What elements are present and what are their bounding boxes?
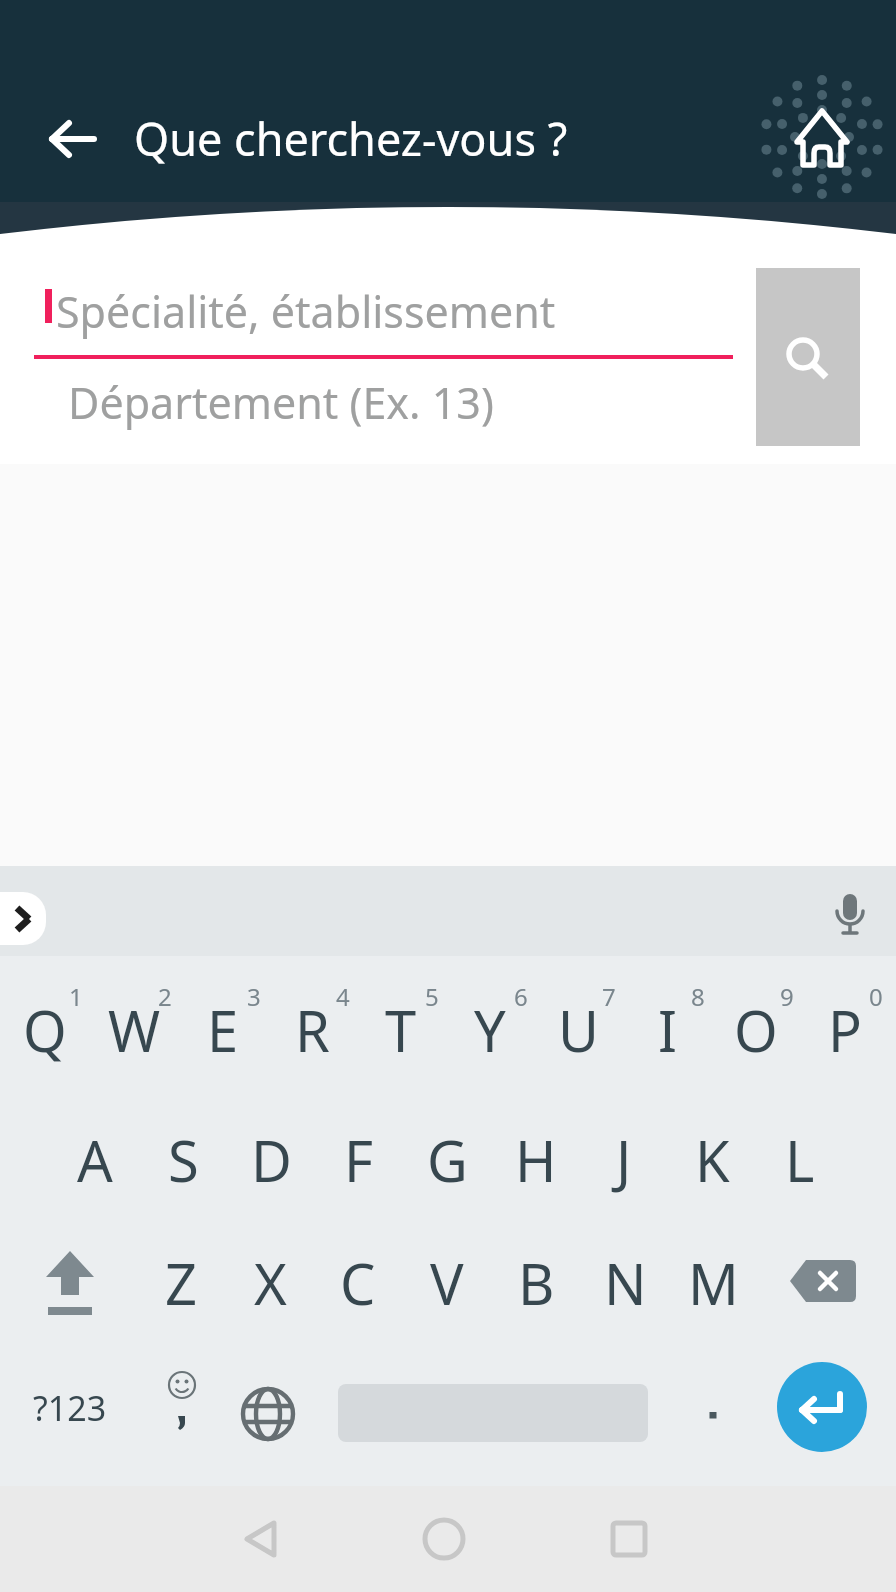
- staticText: M: [688, 1245, 739, 1321]
- staticText: D: [251, 1122, 292, 1198]
- button[interactable]: E: [178, 970, 268, 1090]
- button[interactable]: [584, 1494, 674, 1584]
- staticText: 1: [69, 980, 83, 1013]
- button[interactable]: [0, 892, 46, 945]
- button[interactable]: Y: [445, 970, 535, 1090]
- staticText: K: [695, 1122, 730, 1198]
- staticText: P: [828, 992, 862, 1068]
- button[interactable]: J: [579, 1100, 669, 1220]
- button[interactable]: O: [711, 970, 801, 1090]
- button[interactable]: P: [800, 970, 890, 1090]
- button[interactable]: 6: [501, 976, 541, 1016]
- staticText: Z: [165, 1245, 198, 1321]
- button[interactable]: V: [402, 1223, 492, 1343]
- staticText: S: [168, 1122, 199, 1198]
- staticText: F: [344, 1122, 374, 1198]
- button[interactable]: Spécialité, établissement: [56, 270, 732, 352]
- staticText: H: [515, 1122, 557, 1198]
- button[interactable]: W: [89, 970, 179, 1090]
- staticText: 2: [158, 980, 172, 1013]
- staticText: Y: [474, 992, 506, 1068]
- button[interactable]: [135, 1353, 225, 1463]
- staticText: L: [785, 1122, 815, 1198]
- staticText: I: [658, 992, 677, 1068]
- button[interactable]: N: [580, 1223, 670, 1343]
- button[interactable]: 9: [767, 976, 807, 1016]
- staticText: 6: [514, 980, 528, 1013]
- staticText: 7: [602, 980, 616, 1013]
- button[interactable]: T: [356, 970, 446, 1090]
- button[interactable]: [38, 104, 108, 174]
- staticText: U: [558, 992, 599, 1068]
- button[interactable]: 3: [234, 976, 274, 1016]
- staticText: W: [108, 992, 161, 1068]
- staticText: Département (Ex. 13): [68, 373, 494, 432]
- button[interactable]: [25, 1223, 115, 1343]
- button[interactable]: S: [138, 1100, 228, 1220]
- button[interactable]: [778, 1221, 868, 1341]
- button[interactable]: 4: [323, 976, 363, 1016]
- button[interactable]: Q: [0, 970, 90, 1090]
- staticText: Q: [23, 992, 67, 1068]
- button[interactable]: ?123: [10, 1358, 130, 1458]
- button[interactable]: L: [755, 1100, 845, 1220]
- staticText: E: [207, 992, 239, 1068]
- button[interactable]: [223, 1359, 313, 1469]
- button[interactable]: 0: [856, 976, 896, 1016]
- button[interactable]: I: [622, 970, 712, 1090]
- staticText: Spécialité, établissement: [56, 282, 556, 341]
- button[interactable]: Z: [136, 1223, 226, 1343]
- button[interactable]: [752, 67, 892, 207]
- staticText: C: [340, 1245, 376, 1321]
- button[interactable]: H: [491, 1100, 581, 1220]
- button[interactable]: F: [314, 1100, 404, 1220]
- button[interactable]: C: [313, 1223, 403, 1343]
- staticText: B: [518, 1245, 555, 1321]
- staticText: 4: [336, 980, 350, 1013]
- button[interactable]: 8: [678, 976, 718, 1016]
- button[interactable]: B: [491, 1223, 581, 1343]
- staticText: 3: [247, 980, 261, 1013]
- button[interactable]: 1: [56, 976, 96, 1016]
- button[interactable]: [673, 1365, 753, 1465]
- staticText: X: [254, 1245, 287, 1321]
- button[interactable]: Département (Ex. 13): [68, 362, 732, 442]
- button[interactable]: R: [267, 970, 357, 1090]
- button[interactable]: [216, 1494, 306, 1584]
- button[interactable]: D: [226, 1100, 316, 1220]
- button[interactable]: [399, 1494, 489, 1584]
- staticText: ?123: [33, 1385, 107, 1431]
- button[interactable]: [777, 1362, 867, 1452]
- staticText: O: [734, 992, 778, 1068]
- staticText: J: [616, 1122, 632, 1198]
- button[interactable]: X: [225, 1223, 315, 1343]
- staticText: 5: [425, 980, 439, 1013]
- staticText: N: [604, 1245, 647, 1321]
- button[interactable]: 2: [145, 976, 185, 1016]
- button[interactable]: [756, 268, 860, 446]
- staticText: A: [77, 1122, 113, 1198]
- staticText: 9: [780, 980, 794, 1013]
- button[interactable]: K: [667, 1100, 757, 1220]
- staticText: R: [295, 992, 330, 1068]
- button[interactable]: A: [50, 1100, 140, 1220]
- button[interactable]: U: [533, 970, 623, 1090]
- staticText: Que cherchez-vous ?: [134, 108, 568, 169]
- staticText: V: [430, 1245, 464, 1321]
- staticText: 0: [869, 980, 883, 1013]
- button[interactable]: G: [402, 1100, 492, 1220]
- staticText: 8: [691, 980, 705, 1013]
- button[interactable]: M: [668, 1223, 758, 1343]
- staticText: G: [427, 1122, 468, 1198]
- button[interactable]: 7: [589, 976, 629, 1016]
- button[interactable]: 5: [412, 976, 452, 1016]
- staticText: T: [385, 992, 417, 1068]
- button[interactable]: [820, 886, 880, 946]
